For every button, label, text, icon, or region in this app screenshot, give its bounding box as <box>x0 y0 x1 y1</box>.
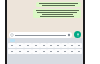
button[interactable]: Send <box>74 31 81 38</box>
button[interactable] <box>16 43 24 48</box>
button[interactable] <box>33 9 81 18</box>
button[interactable] <box>40 49 47 54</box>
button[interactable] <box>8 49 16 54</box>
button[interactable] <box>75 43 82 48</box>
button[interactable] <box>68 43 75 48</box>
button[interactable] <box>16 49 24 54</box>
button[interactable] <box>9 32 72 38</box>
button[interactable]: Suggestion <box>10 39 15 42</box>
button[interactable] <box>75 49 82 54</box>
button[interactable] <box>32 43 40 48</box>
button[interactable] <box>54 49 61 54</box>
button[interactable] <box>8 43 16 48</box>
button[interactable] <box>40 43 47 48</box>
button[interactable] <box>47 49 54 54</box>
button[interactable] <box>24 43 32 48</box>
button[interactable] <box>24 49 32 54</box>
button[interactable] <box>54 43 61 48</box>
button[interactable] <box>68 49 75 54</box>
button[interactable] <box>36 2 81 7</box>
button[interactable] <box>47 43 54 48</box>
button[interactable] <box>61 49 68 54</box>
button[interactable] <box>32 49 40 54</box>
button[interactable] <box>61 43 68 48</box>
